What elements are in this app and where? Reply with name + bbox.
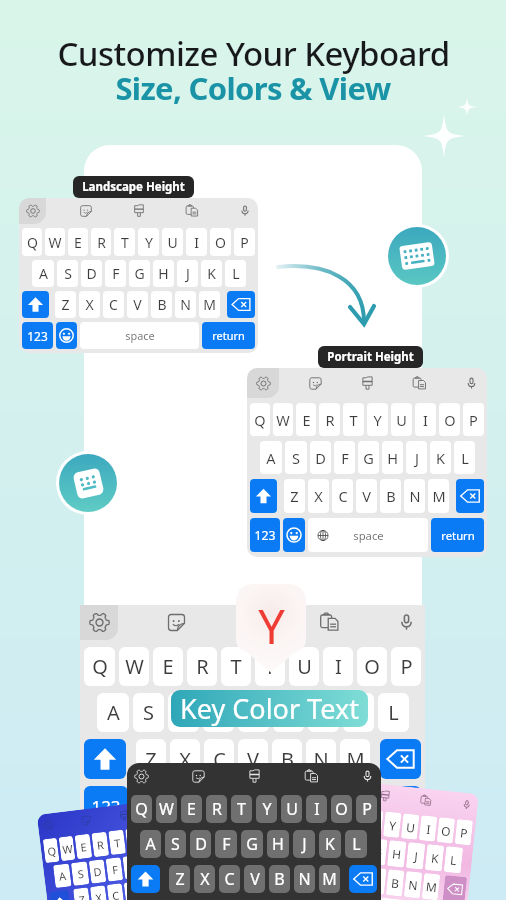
button[interactable]: X (194, 865, 215, 893)
button[interactable]: R (187, 647, 217, 686)
button[interactable]: Keyboard size (56, 451, 120, 515)
button[interactable]: 123 (22, 322, 53, 349)
button[interactable]: B (272, 739, 302, 779)
button[interactable]: A (97, 693, 129, 732)
button[interactable]: Emoji (307, 890, 327, 900)
button[interactable]: 123 (250, 518, 280, 552)
button[interactable]: C (332, 479, 353, 513)
button[interactable]: Y (367, 403, 388, 436)
button[interactable]: return (344, 786, 421, 826)
button[interactable]: 123 (84, 786, 128, 826)
button[interactable]: Voice input (387, 605, 425, 640)
button[interactable]: O (439, 403, 460, 436)
button[interactable]: Y (256, 795, 277, 823)
button[interactable]: C (107, 883, 124, 900)
button[interactable]: Q (291, 802, 311, 828)
button[interactable]: D (330, 834, 350, 862)
button[interactable]: A (294, 830, 313, 858)
button[interactable]: E (296, 403, 316, 436)
button[interactable]: Emoji (283, 518, 305, 552)
button[interactable]: Z (314, 862, 333, 889)
button[interactable]: P (463, 403, 484, 436)
button[interactable]: L (454, 441, 475, 474)
button[interactable]: R (319, 403, 340, 436)
button[interactable]: Clipboard (403, 368, 435, 398)
button[interactable]: H (387, 840, 406, 868)
button[interactable]: J (156, 851, 174, 876)
button[interactable]: L (444, 846, 463, 874)
button[interactable]: Z (55, 291, 76, 318)
button[interactable]: Key Color Text (171, 690, 368, 727)
button[interactable]: P (356, 795, 377, 823)
button[interactable]: Backspace (349, 865, 377, 893)
button[interactable]: Keyboard layout (385, 224, 449, 288)
button[interactable]: M (319, 865, 340, 893)
button[interactable]: Shift (285, 858, 311, 887)
button[interactable]: R (347, 808, 366, 834)
button[interactable]: B (380, 479, 401, 513)
button[interactable]: R (91, 832, 109, 857)
button[interactable]: Themes (373, 783, 397, 809)
button[interactable]: U (142, 825, 160, 851)
button[interactable]: K (425, 844, 444, 872)
button[interactable]: U (289, 647, 319, 686)
button[interactable]: Z (284, 479, 305, 513)
button[interactable]: I (186, 228, 207, 256)
button[interactable]: T (108, 829, 126, 855)
button[interactable]: V (124, 881, 141, 900)
button[interactable]: X (332, 863, 351, 891)
button[interactable]: N (294, 865, 315, 893)
button[interactable]: L (378, 693, 409, 732)
button[interactable]: W (59, 836, 75, 861)
button[interactable]: I (306, 795, 327, 823)
button[interactable]: D (310, 441, 331, 474)
button[interactable]: M (428, 479, 449, 513)
button[interactable]: D (89, 859, 106, 884)
button[interactable]: X (90, 885, 108, 900)
button[interactable]: Z (169, 865, 190, 893)
button[interactable]: U (162, 228, 183, 256)
button[interactable]: R (91, 228, 111, 256)
button[interactable]: S (133, 693, 164, 732)
button[interactable]: Stickers (72, 198, 99, 224)
button[interactable]: G (368, 838, 388, 866)
button[interactable]: A (140, 830, 161, 858)
button[interactable]: O (437, 817, 455, 844)
button[interactable]: H (382, 441, 403, 474)
button[interactable]: G (122, 855, 140, 880)
button[interactable]: Y (125, 827, 143, 853)
button[interactable]: M (422, 873, 440, 900)
button[interactable]: E (153, 647, 183, 686)
button[interactable]: H (139, 853, 157, 878)
button[interactable]: Shift (250, 479, 277, 513)
button[interactable]: U (401, 813, 419, 840)
button[interactable]: K (173, 849, 191, 873)
button[interactable]: T (231, 795, 252, 823)
button[interactable] (326, 892, 421, 900)
button[interactable]: B (151, 291, 172, 318)
button[interactable]: L (345, 830, 367, 858)
button[interactable]: I (415, 403, 436, 436)
button[interactable]: Themes (112, 803, 135, 828)
button[interactable]: V (368, 867, 387, 895)
button[interactable]: N (306, 739, 336, 779)
button[interactable]: Landscape Height (73, 176, 194, 198)
button[interactable]: L (225, 260, 246, 287)
button[interactable]: S (312, 832, 331, 860)
button[interactable]: T (114, 228, 135, 256)
button[interactable]: T (221, 647, 251, 686)
button[interactable]: Settings (247, 368, 279, 398)
button[interactable]: N (175, 291, 196, 318)
button[interactable]: Themes (351, 368, 383, 398)
button[interactable]: W (156, 795, 177, 823)
button[interactable]: H (273, 693, 304, 732)
button[interactable]: S (71, 861, 89, 886)
button[interactable]: O (357, 647, 387, 686)
button[interactable]: N (157, 877, 175, 900)
button[interactable]: D (81, 260, 102, 287)
button[interactable]: Stickers (74, 808, 97, 832)
button[interactable]: Q (131, 795, 152, 823)
button[interactable]: W (119, 647, 149, 686)
button[interactable]: Shift (22, 291, 49, 318)
